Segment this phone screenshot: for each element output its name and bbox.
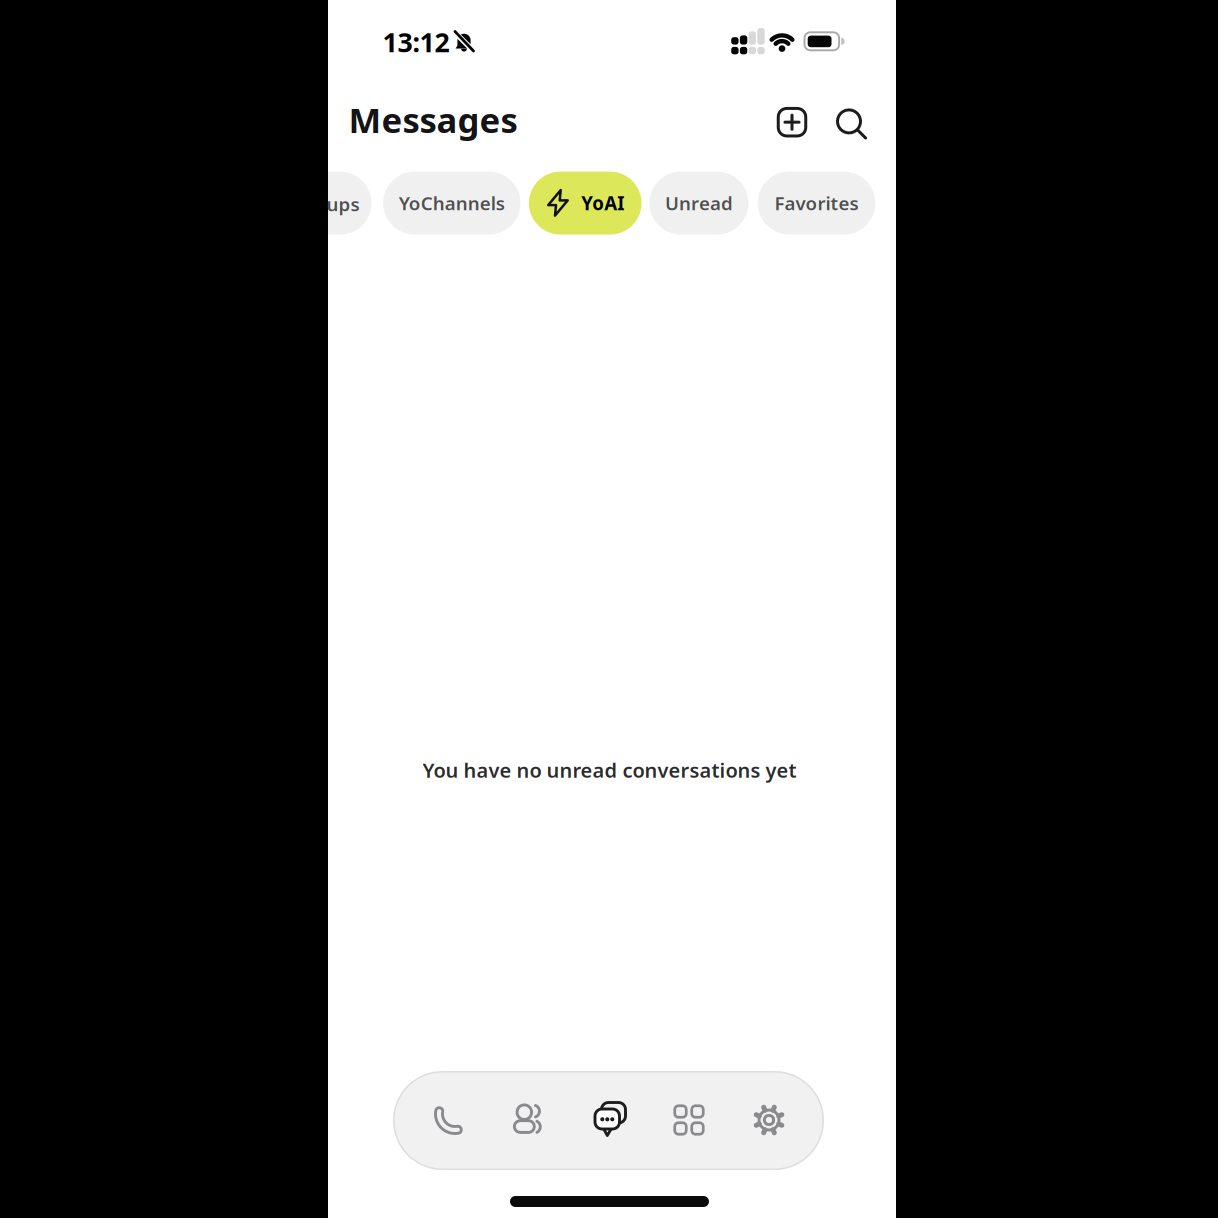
button[interactable] bbox=[746, 1097, 792, 1143]
button[interactable]: Unread bbox=[649, 172, 748, 235]
button[interactable]: YoChannels bbox=[383, 172, 521, 235]
staticText: Unread bbox=[665, 191, 733, 215]
button[interactable] bbox=[777, 107, 807, 137]
staticText: ups bbox=[326, 192, 359, 216]
button[interactable] bbox=[505, 1097, 553, 1143]
button[interactable] bbox=[426, 1097, 472, 1143]
button[interactable]: YoAI bbox=[529, 172, 641, 235]
button[interactable] bbox=[666, 1097, 712, 1143]
button[interactable] bbox=[836, 108, 868, 140]
staticText: Favorites bbox=[774, 191, 858, 215]
staticText: 13:12 bbox=[382, 24, 449, 60]
staticText: You have no unread conversations yet bbox=[423, 757, 797, 783]
staticText: YoChannels bbox=[399, 191, 505, 215]
staticText: YoAI bbox=[581, 191, 624, 215]
button[interactable] bbox=[584, 1096, 632, 1144]
button[interactable]: Favorites bbox=[758, 172, 875, 235]
button[interactable]: ups bbox=[328, 172, 371, 235]
staticText: Messages bbox=[348, 96, 517, 142]
